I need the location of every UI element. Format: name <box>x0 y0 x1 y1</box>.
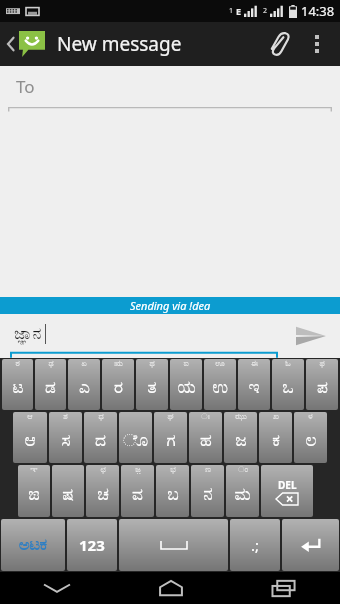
staticText: Sending via !dea <box>130 298 211 313</box>
staticText: ಒ <box>282 379 294 396</box>
button[interactable]: ಣ <box>191 465 224 517</box>
button[interactable]: ಆ <box>13 412 47 463</box>
button[interactable]: ಈ <box>238 359 270 410</box>
staticText: ಬ <box>167 486 179 503</box>
button[interactable]: Send <box>282 314 340 358</box>
button[interactable]: ಫ <box>306 359 338 410</box>
button[interactable]: ಜ್ಞಾನ <box>0 314 282 358</box>
staticText: ಸ <box>61 432 71 449</box>
button[interactable]: .; <box>230 519 280 571</box>
button[interactable]: ಊ <box>204 359 236 410</box>
staticText: 2 <box>263 6 268 16</box>
staticText: ಘ <box>167 413 174 421</box>
other: Enter <box>300 534 322 556</box>
button[interactable]: ಖ <box>259 412 292 463</box>
staticText: ಶ <box>63 413 68 421</box>
button[interactable]: 123 <box>67 519 117 571</box>
button[interactable]: Enter <box>282 519 339 571</box>
staticText: ಝು <box>235 413 247 421</box>
button[interactable]: DEL <box>261 465 313 517</box>
staticText: .; <box>251 535 260 555</box>
staticText: ಇ <box>248 379 260 396</box>
staticText: ಷ <box>62 486 74 503</box>
staticText: ಥ <box>149 360 155 368</box>
button[interactable] <box>119 519 228 571</box>
button[interactable]: ಢ <box>35 359 66 410</box>
staticText: ೊ <box>123 432 148 449</box>
button[interactable]: ಭ <box>156 465 189 517</box>
staticText: DEL <box>278 478 297 492</box>
staticText: ಂ <box>238 466 248 474</box>
staticText: ಭ <box>170 466 176 474</box>
button[interactable]: ಜ಼ <box>121 465 154 517</box>
staticText: ಎ <box>79 379 90 396</box>
button[interactable]: To <box>0 66 340 112</box>
button[interactable]: ೊ <box>119 412 152 463</box>
staticText: ಹ <box>200 432 212 449</box>
staticText: ಗ <box>166 432 176 449</box>
staticText: ಏ <box>81 360 87 368</box>
staticText: ಚ <box>97 486 109 503</box>
staticText: 123 <box>79 535 105 555</box>
staticText: ಙ <box>28 486 40 503</box>
staticText: ಳ <box>308 413 313 421</box>
staticText: ಃ <box>201 413 210 421</box>
staticText: ಋ <box>114 360 123 368</box>
staticText: ರ <box>114 379 123 396</box>
button[interactable]: ಘ <box>154 412 187 463</box>
staticText: ತ <box>147 379 157 396</box>
button[interactable]: ಠ <box>2 359 33 410</box>
staticText: ಛ <box>100 466 106 474</box>
button[interactable]: ಥ <box>136 359 168 410</box>
staticText: ಢ <box>48 360 54 368</box>
staticText: ಐ <box>183 360 189 368</box>
button[interactable]: Attach <box>258 23 300 65</box>
staticText: ಓ <box>285 360 291 368</box>
button[interactable]: ಶ <box>49 412 82 463</box>
button[interactable]: ಋ <box>102 359 134 410</box>
staticText: ಆ <box>27 413 33 421</box>
button[interactable]: ಷ <box>52 465 84 517</box>
button[interactable]: ಃ <box>189 412 222 463</box>
staticText: ಊ <box>215 360 225 368</box>
staticText: ಞ <box>30 466 38 474</box>
button[interactable]: ಳ <box>294 412 327 463</box>
button[interactable]: ಝು <box>224 412 257 463</box>
button[interactable]: Home <box>114 572 227 604</box>
button[interactable]: ಅಟಕ <box>1 519 65 571</box>
button[interactable]: ಏ <box>68 359 100 410</box>
staticText: ಮ <box>234 486 251 503</box>
staticText: 1 <box>229 6 234 16</box>
button[interactable]: ಧ <box>84 412 117 463</box>
staticText: ವ <box>132 486 143 503</box>
button[interactable]: ಓ <box>272 359 304 410</box>
staticText: ಯ <box>177 379 196 396</box>
staticText: ಅಟಕ <box>19 537 48 553</box>
staticText: ಠ <box>15 360 20 368</box>
staticText: ಜ಼ <box>135 466 141 474</box>
staticText: ಕ <box>272 432 280 449</box>
staticText: ಫ <box>319 360 325 368</box>
button[interactable]: Back <box>4 31 47 57</box>
staticText: ಖ <box>273 413 279 421</box>
staticText: ನ <box>203 486 213 503</box>
other: Back <box>6 35 16 53</box>
staticText: ಜ <box>235 432 247 449</box>
staticText: ಣ <box>205 466 211 474</box>
staticText: ಡ <box>45 379 56 396</box>
staticText: E <box>236 5 242 17</box>
button[interactable]: ಂ <box>226 465 259 517</box>
staticText: New message <box>57 31 182 57</box>
button[interactable]: More options <box>300 27 334 61</box>
staticText: ಈ <box>251 360 258 368</box>
button[interactable]: ಛ <box>86 465 119 517</box>
staticText: ಲ <box>305 432 317 449</box>
staticText: ಜ್ಞಾನ <box>14 326 42 342</box>
button[interactable]: Hide keyboard <box>0 572 114 604</box>
button[interactable]: Recent apps <box>227 572 340 604</box>
button[interactable]: ಞ <box>18 465 50 517</box>
staticText: 14:38 <box>301 2 335 20</box>
staticText: ಧ <box>98 413 104 421</box>
staticText: ಆ <box>24 432 36 449</box>
button[interactable]: ಐ <box>170 359 202 410</box>
